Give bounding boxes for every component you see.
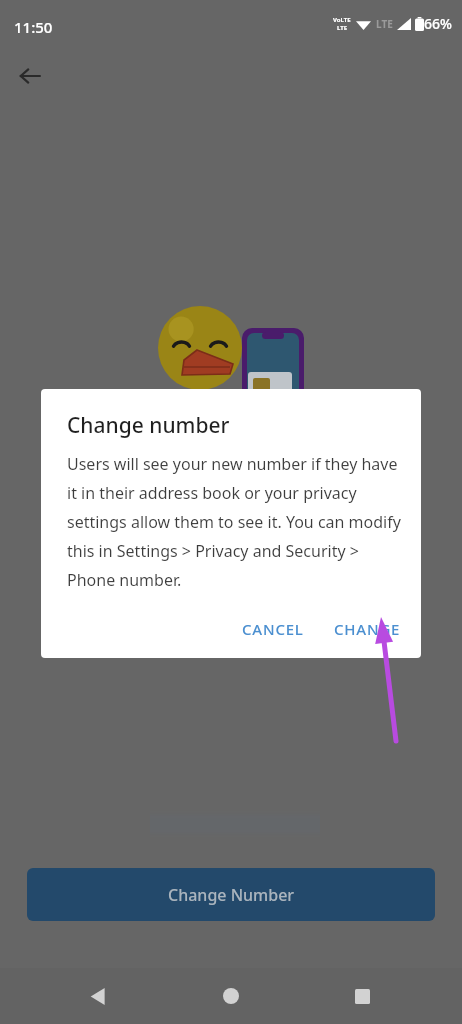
staticText: Users will see your new number if they h… [67,453,403,590]
button[interactable]: Home [207,972,255,1020]
button[interactable]: CHANGE [322,610,413,648]
staticText: Change number [67,411,230,440]
button[interactable]: CANCEL [230,610,316,648]
staticText: CANCEL [242,619,304,639]
button[interactable]: Change Number [27,868,435,921]
staticText: 66% [424,14,452,33]
button[interactable]: Back [73,972,121,1020]
staticText: 11:50 [14,17,53,37]
staticText: Change Number [168,884,295,906]
button[interactable]: Recent apps [338,972,386,1020]
button[interactable]: Back [8,54,52,98]
staticText: VoLTE [333,16,351,24]
staticText: CHANGE [334,619,401,639]
staticText: LTE [376,17,393,31]
staticText: LTE [337,24,348,32]
